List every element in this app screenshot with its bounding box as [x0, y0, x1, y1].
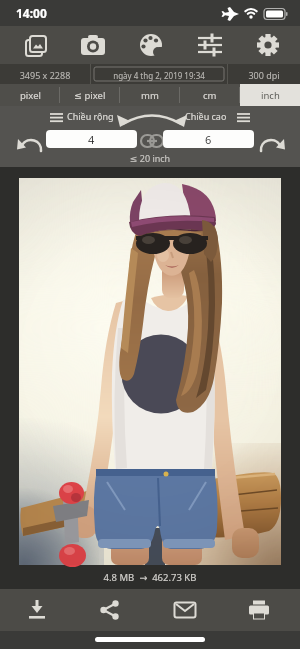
- button[interactable]: [191, 26, 229, 64]
- staticText: inch: [261, 89, 280, 102]
- staticText: 4.8 MB → 462.73 KB: [0, 571, 300, 584]
- staticText: 6: [205, 132, 212, 147]
- staticText: Chiều cao: [185, 110, 227, 122]
- button[interactable]: cm: [180, 84, 240, 106]
- staticText: 14:00: [16, 5, 47, 21]
- staticText: pixel: [20, 89, 41, 102]
- button[interactable]: [89, 589, 131, 631]
- staticText: mm: [141, 89, 159, 102]
- button[interactable]: [74, 26, 112, 64]
- button[interactable]: [16, 589, 58, 631]
- button[interactable]: mm: [120, 84, 180, 106]
- button[interactable]: [132, 26, 170, 64]
- staticText: cm: [203, 89, 217, 102]
- staticText: ≤ 20 inch: [0, 152, 300, 164]
- button[interactable]: pixel: [0, 84, 60, 106]
- button[interactable]: [249, 26, 287, 64]
- button[interactable]: ≤ pixel: [60, 84, 120, 106]
- button[interactable]: 6: [163, 130, 254, 148]
- button[interactable]: inch: [240, 84, 300, 106]
- button[interactable]: [164, 589, 206, 631]
- staticText: 3495 x 2288: [0, 69, 90, 81]
- staticText: ngày 4 thg 2, 2019 19:34: [94, 70, 224, 81]
- staticText: 300 dpi: [228, 69, 300, 81]
- button[interactable]: [238, 589, 280, 631]
- button[interactable]: 4: [46, 130, 137, 148]
- staticText: ≤ pixel: [74, 89, 106, 102]
- button[interactable]: [18, 26, 56, 64]
- staticText: 4: [88, 132, 95, 147]
- staticText: Chiều rộng: [67, 110, 114, 122]
